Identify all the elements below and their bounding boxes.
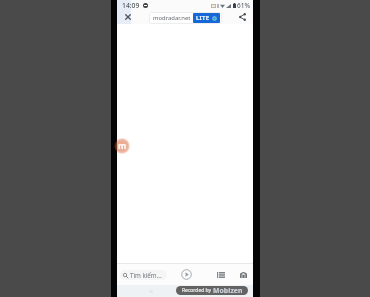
- button[interactable]: Tìm kiếm...: [120, 270, 167, 280]
- staticText: 61%: [237, 1, 250, 10]
- button[interactable]: Close: [121, 10, 134, 23]
- staticText: LITE: [196, 14, 210, 22]
- button[interactable]: Home: [237, 268, 250, 281]
- staticText: Mobizen: [213, 286, 243, 295]
- staticText: Recorded by: [182, 287, 213, 294]
- button[interactable]: Share: [236, 10, 249, 23]
- button[interactable]: Chat: [114, 138, 130, 154]
- button[interactable]: modradar.net: [149, 12, 222, 24]
- button[interactable]: Play: [179, 267, 194, 282]
- staticText: 14:09: [122, 1, 140, 10]
- staticText: m: [118, 140, 127, 152]
- staticText: modradar.net: [153, 14, 191, 22]
- button[interactable]: Tabs: [214, 268, 228, 282]
- staticText: Tìm kiếm...: [130, 271, 162, 279]
